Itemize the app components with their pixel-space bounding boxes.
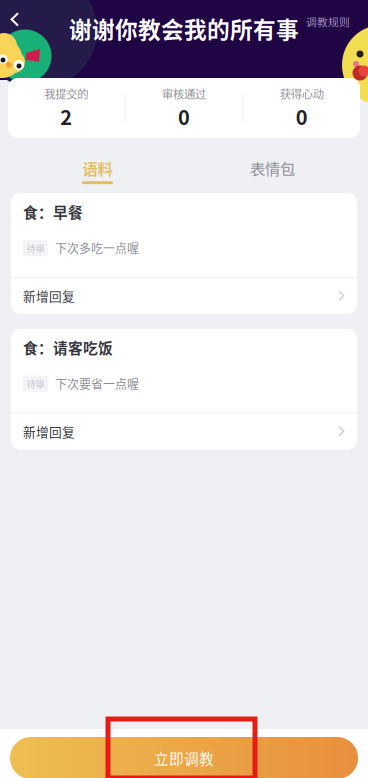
button[interactable]: 立即调教 (0, 729, 368, 778)
button[interactable]: 新增回复 (11, 278, 357, 314)
staticText: 下次多吃一点喔 (55, 239, 139, 257)
staticText: 0 (178, 102, 190, 131)
staticText: 我提交的 (44, 85, 88, 102)
staticText: 待审 (26, 241, 44, 255)
staticText: 0 (296, 102, 308, 131)
staticText: 表情包 (250, 157, 295, 179)
staticText: 食：请客吃饭 (23, 337, 113, 358)
button[interactable]: 新增回复 (11, 413, 357, 449)
staticText: 谢谢你教会我的所有事 (69, 12, 299, 45)
button[interactable]: 调教规则 (300, 10, 356, 33)
staticText: 获得心动 (280, 85, 324, 102)
button[interactable]: 表情包 (185, 138, 360, 193)
button[interactable]: 语料 (10, 138, 185, 193)
staticText: 调教规则 (306, 14, 350, 29)
staticText: 立即调教 (154, 747, 214, 769)
staticText: 新增回复 (23, 287, 75, 305)
staticText: 下次要省一点喔 (55, 375, 139, 392)
staticText: 语料 (82, 157, 112, 179)
staticText: 审核通过 (162, 85, 206, 102)
staticText: 待审 (26, 377, 44, 390)
staticText: 2 (60, 102, 72, 131)
staticText: 新增回复 (23, 422, 75, 441)
button[interactable]: Back (0, 2, 33, 37)
staticText: 食：早餐 (23, 201, 83, 222)
